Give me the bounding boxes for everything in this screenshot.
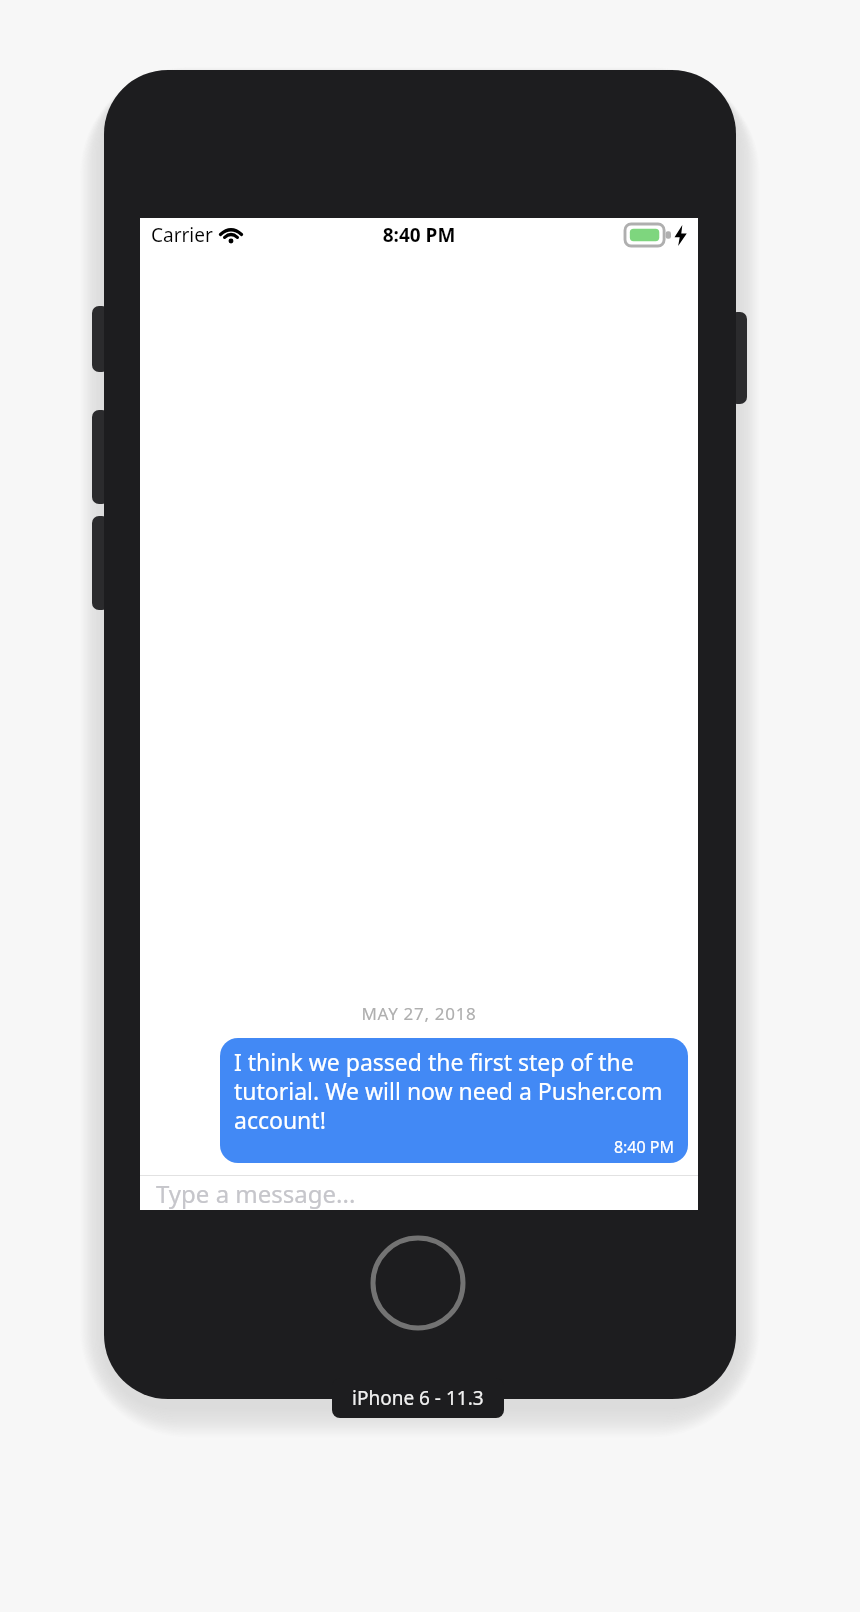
button[interactable]: Type a message... [140, 1176, 698, 1210]
staticText: iPhone 6 - 11.3 [352, 1385, 484, 1411]
button[interactable]: iPhone 6 - 11.3 [332, 1378, 504, 1418]
staticText: I think we passed the first step of the … [234, 1046, 674, 1136]
other: Wi-Fi signal [220, 226, 242, 243]
staticText: 8:40 PM [234, 1136, 674, 1158]
other: Battery charging [625, 224, 671, 246]
staticText: MAY 27, 2018 [140, 1002, 698, 1025]
staticText: Type a message... [156, 1177, 356, 1210]
staticText: Carrier [151, 222, 213, 248]
staticText: 8:40 PM [140, 222, 698, 248]
button[interactable]: I think we passed the first step of the … [220, 1038, 688, 1163]
